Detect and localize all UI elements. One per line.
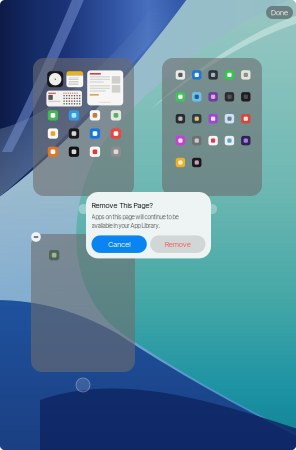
button[interactable]: Cancel (91, 235, 147, 253)
staticText: Done (271, 8, 288, 17)
button[interactable]: Remove (150, 235, 205, 253)
staticText: Remove (165, 240, 191, 249)
button[interactable]: Done (266, 6, 293, 19)
staticText: Cancel (108, 240, 130, 249)
staticText: Remove This Page? (91, 201, 152, 210)
staticText: Apps on this page will continue to be (91, 213, 178, 221)
button[interactable]: Remove page (29, 230, 43, 244)
button[interactable]: Add page (76, 378, 90, 392)
staticText: available in your App Library. (91, 222, 159, 229)
